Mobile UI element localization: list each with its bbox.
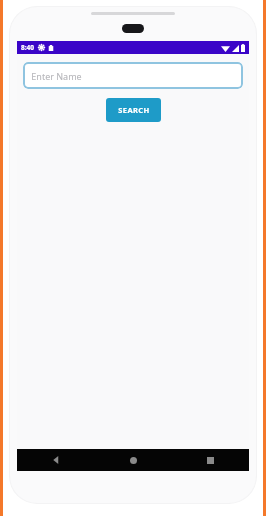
button[interactable]: SEARCH (106, 98, 161, 122)
button[interactable]: Back (17, 449, 95, 471)
staticText: Enter Name (31, 70, 82, 82)
staticText: SEARCH (118, 105, 150, 115)
button[interactable]: Recent apps (172, 449, 249, 471)
button[interactable]: Enter Name (23, 62, 243, 89)
button[interactable]: Home (95, 449, 172, 471)
staticText: 8:40 (21, 43, 34, 52)
